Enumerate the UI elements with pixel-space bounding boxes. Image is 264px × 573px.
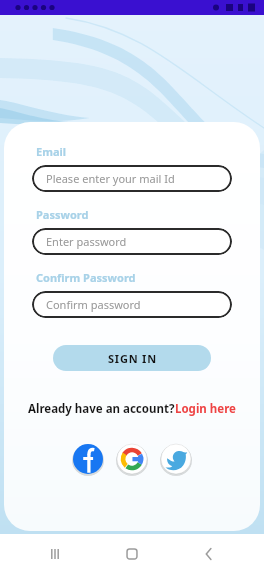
button[interactable]: Sign in with Facebook: [71, 442, 105, 476]
button[interactable]: Sign in with Google: [115, 442, 149, 476]
staticText: Email: [36, 144, 67, 159]
staticText: Login here: [175, 401, 236, 417]
staticText: Confirm password: [46, 297, 141, 312]
staticText: Password: [36, 207, 89, 222]
button[interactable]: Enter password: [32, 228, 232, 255]
staticText: Already have an account?: [28, 401, 175, 417]
staticText: Enter password: [46, 234, 127, 249]
button[interactable]: Recent apps: [33, 534, 77, 573]
button[interactable]: SIGN IN: [53, 345, 211, 371]
staticText: Please enter your mail Id: [46, 171, 175, 186]
button[interactable]: Back: [187, 534, 231, 573]
staticText: SIGN IN: [108, 351, 157, 366]
button[interactable]: Confirm password: [32, 291, 232, 318]
button[interactable]: Login here: [175, 401, 236, 417]
button[interactable]: Sign in with Twitter: [159, 442, 193, 476]
button[interactable]: Home: [110, 534, 154, 573]
staticText: Confirm Password: [36, 270, 136, 285]
button[interactable]: Please enter your mail Id: [32, 165, 232, 192]
